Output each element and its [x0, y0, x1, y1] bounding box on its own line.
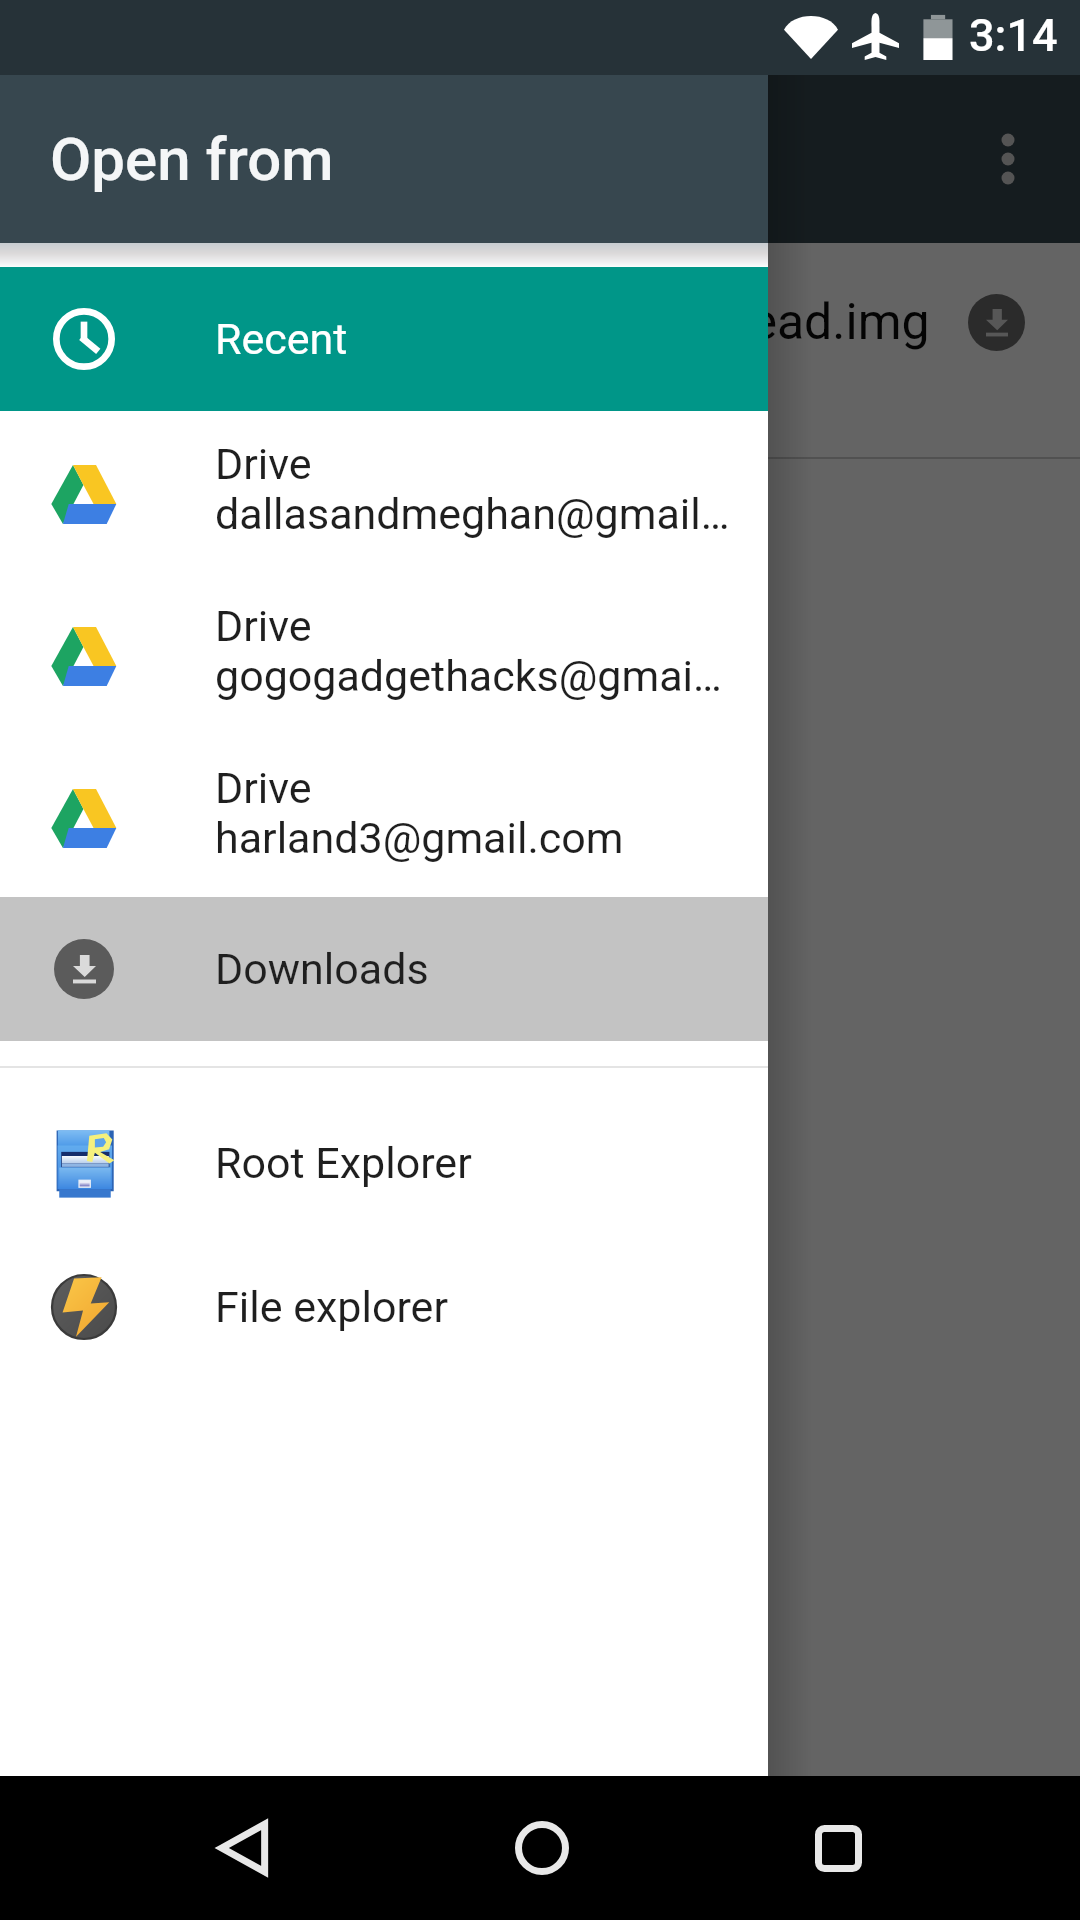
staticText: boot-recovery-head.img [405, 293, 930, 352]
staticText: Downloads [215, 944, 429, 994]
staticText: Open from [50, 124, 334, 194]
button[interactable]: Drive [0, 573, 768, 735]
staticText: File explorer [215, 1282, 448, 1332]
button[interactable]: Drive [0, 735, 768, 897]
staticText: Drive [215, 763, 312, 813]
staticText: Root Explorer [215, 1138, 472, 1188]
button[interactable]: Recent apps [766, 1776, 910, 1920]
staticText: harland3@gmail.com [215, 813, 624, 863]
button[interactable]: Home [470, 1776, 614, 1920]
button[interactable]: Recent [0, 267, 768, 411]
button[interactable]: Root Explorer [0, 1091, 768, 1235]
staticText: gogogadgethacks@gmai… [215, 651, 722, 701]
staticText: Drive [215, 439, 312, 489]
staticText: Drive [215, 601, 312, 651]
staticText: dallasandmeghan@gmail… [215, 489, 730, 539]
button[interactable]: Close drawer [0, 0, 1080, 1920]
button[interactable]: Download [968, 294, 1025, 351]
staticText: Recent [215, 314, 348, 364]
button[interactable]: Drive [0, 411, 768, 573]
button[interactable]: File explorer [0, 1235, 768, 1379]
button[interactable]: More options [948, 99, 1068, 219]
button[interactable]: Back [174, 1776, 318, 1920]
staticText: 3:14 [969, 9, 1058, 62]
button[interactable]: Downloads [0, 897, 768, 1041]
